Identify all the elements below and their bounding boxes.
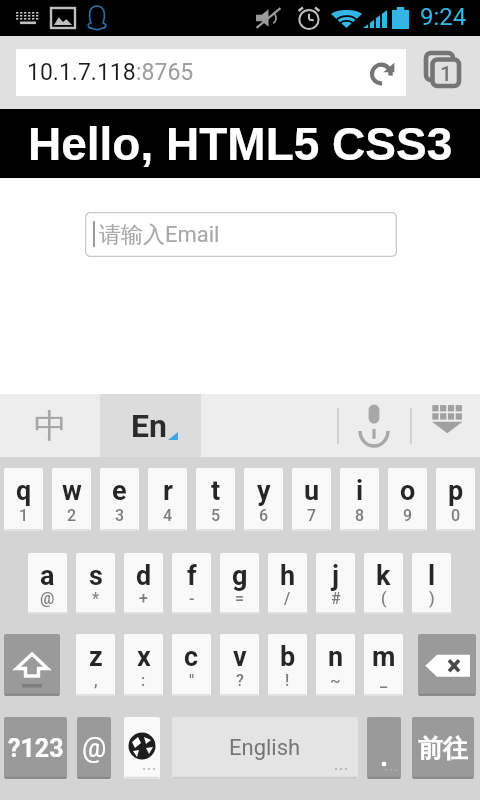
staticText: @ <box>40 589 55 608</box>
button[interactable] <box>77 717 111 779</box>
button[interactable]: Hide keyboard <box>420 394 468 457</box>
staticText: * <box>92 589 100 608</box>
staticText: 1 <box>19 506 29 525</box>
staticText: z <box>89 641 103 673</box>
button[interactable]: q <box>4 468 43 531</box>
staticText: w <box>62 475 82 507</box>
button[interactable]: Space <box>172 717 358 779</box>
staticText: x <box>137 641 151 673</box>
button[interactable]: e <box>100 468 139 531</box>
button[interactable]: k <box>364 553 403 614</box>
button[interactable]: Change language <box>124 717 160 779</box>
button[interactable]: Backspace <box>418 634 476 696</box>
staticText: g <box>232 560 248 592</box>
button[interactable]: Go <box>412 717 474 779</box>
staticText: 前往 <box>418 733 468 764</box>
button[interactable]: Symbols <box>4 717 67 779</box>
staticText: 9 <box>403 506 413 525</box>
staticText: 2 <box>67 506 77 525</box>
button[interactable]: f <box>172 553 211 614</box>
button[interactable]: Refresh <box>358 49 406 96</box>
staticText: c <box>184 641 199 673</box>
staticText: s <box>89 560 103 592</box>
staticText: m <box>372 641 396 673</box>
button[interactable]: a <box>28 553 67 614</box>
staticText: e <box>112 475 127 507</box>
staticText: q <box>16 475 32 507</box>
staticText: 请输入Email <box>99 221 220 249</box>
staticText: u <box>304 475 320 507</box>
staticText: f <box>187 560 197 592</box>
button[interactable]: h <box>268 553 307 614</box>
button[interactable]: j <box>316 553 355 614</box>
button[interactable]: u <box>292 468 331 531</box>
button[interactable]: c <box>172 634 211 696</box>
staticText: Hello, HTML5 CSS3 <box>28 118 453 169</box>
button[interactable]: En <box>100 394 201 457</box>
staticText: a <box>40 560 55 592</box>
staticText: @ <box>82 732 107 764</box>
button[interactable]: d <box>124 553 163 614</box>
staticText: ~ <box>330 671 341 690</box>
staticText: n <box>328 641 344 673</box>
staticText: 9:24 <box>420 3 467 31</box>
staticText: l <box>428 560 436 592</box>
button[interactable]: 请输入Email <box>85 212 397 257</box>
staticText: p <box>448 475 464 507</box>
staticText: 10.1.7.118 <box>27 59 136 86</box>
button[interactable]: Tabs <box>420 49 466 95</box>
button[interactable]: r <box>148 468 187 531</box>
staticText: j <box>332 560 340 592</box>
button[interactable]: g <box>220 553 259 614</box>
staticText: 0 <box>451 506 461 525</box>
staticText: ?123 <box>8 734 64 763</box>
button[interactable]: v <box>220 634 259 696</box>
button[interactable]: 中 <box>0 394 100 457</box>
button[interactable]: n <box>316 634 355 696</box>
staticText: ( <box>381 589 387 608</box>
staticText: 7 <box>307 506 317 525</box>
staticText: v <box>233 641 247 673</box>
staticText: , <box>94 671 98 690</box>
staticText: / <box>284 589 291 608</box>
button[interactable]: m <box>364 634 403 696</box>
button[interactable]: x <box>124 634 163 696</box>
button[interactable]: y <box>244 468 283 531</box>
staticText: = <box>235 589 244 608</box>
staticText: 4 <box>163 506 173 525</box>
button[interactable]: b <box>268 634 307 696</box>
staticText: k <box>376 560 391 592</box>
button[interactable]: l <box>412 553 451 614</box>
button[interactable]: o <box>388 468 427 531</box>
staticText: d <box>136 560 152 592</box>
button[interactable]: i <box>340 468 379 531</box>
staticText: o <box>400 475 416 507</box>
staticText: t <box>211 475 221 507</box>
staticText: : <box>141 671 146 690</box>
button[interactable]: 10.1.7.118 <box>16 49 406 96</box>
staticText: h <box>280 560 296 592</box>
button[interactable]: Period <box>367 717 401 779</box>
staticText: :8765 <box>136 59 194 86</box>
staticText: 3 <box>115 506 125 525</box>
staticText: i <box>356 475 364 507</box>
staticText: y <box>257 475 271 507</box>
button[interactable]: Voice input <box>350 394 398 457</box>
staticText: 中 <box>34 405 67 447</box>
staticText: " <box>189 671 195 690</box>
button[interactable]: w <box>52 468 91 531</box>
staticText: En <box>131 407 167 445</box>
button[interactable]: z <box>76 634 115 696</box>
staticText: 1 <box>440 62 452 87</box>
staticText: English <box>229 735 301 761</box>
staticText: ? <box>236 671 244 690</box>
staticText: 8 <box>355 506 365 525</box>
button[interactable]: t <box>196 468 235 531</box>
button[interactable]: p <box>436 468 475 531</box>
staticText: _ <box>380 671 388 690</box>
staticText: 5 <box>211 506 221 525</box>
button[interactable]: s <box>76 553 115 614</box>
button[interactable]: Shift <box>4 634 60 696</box>
staticText: ! <box>285 671 290 690</box>
staticText: r <box>163 475 173 507</box>
